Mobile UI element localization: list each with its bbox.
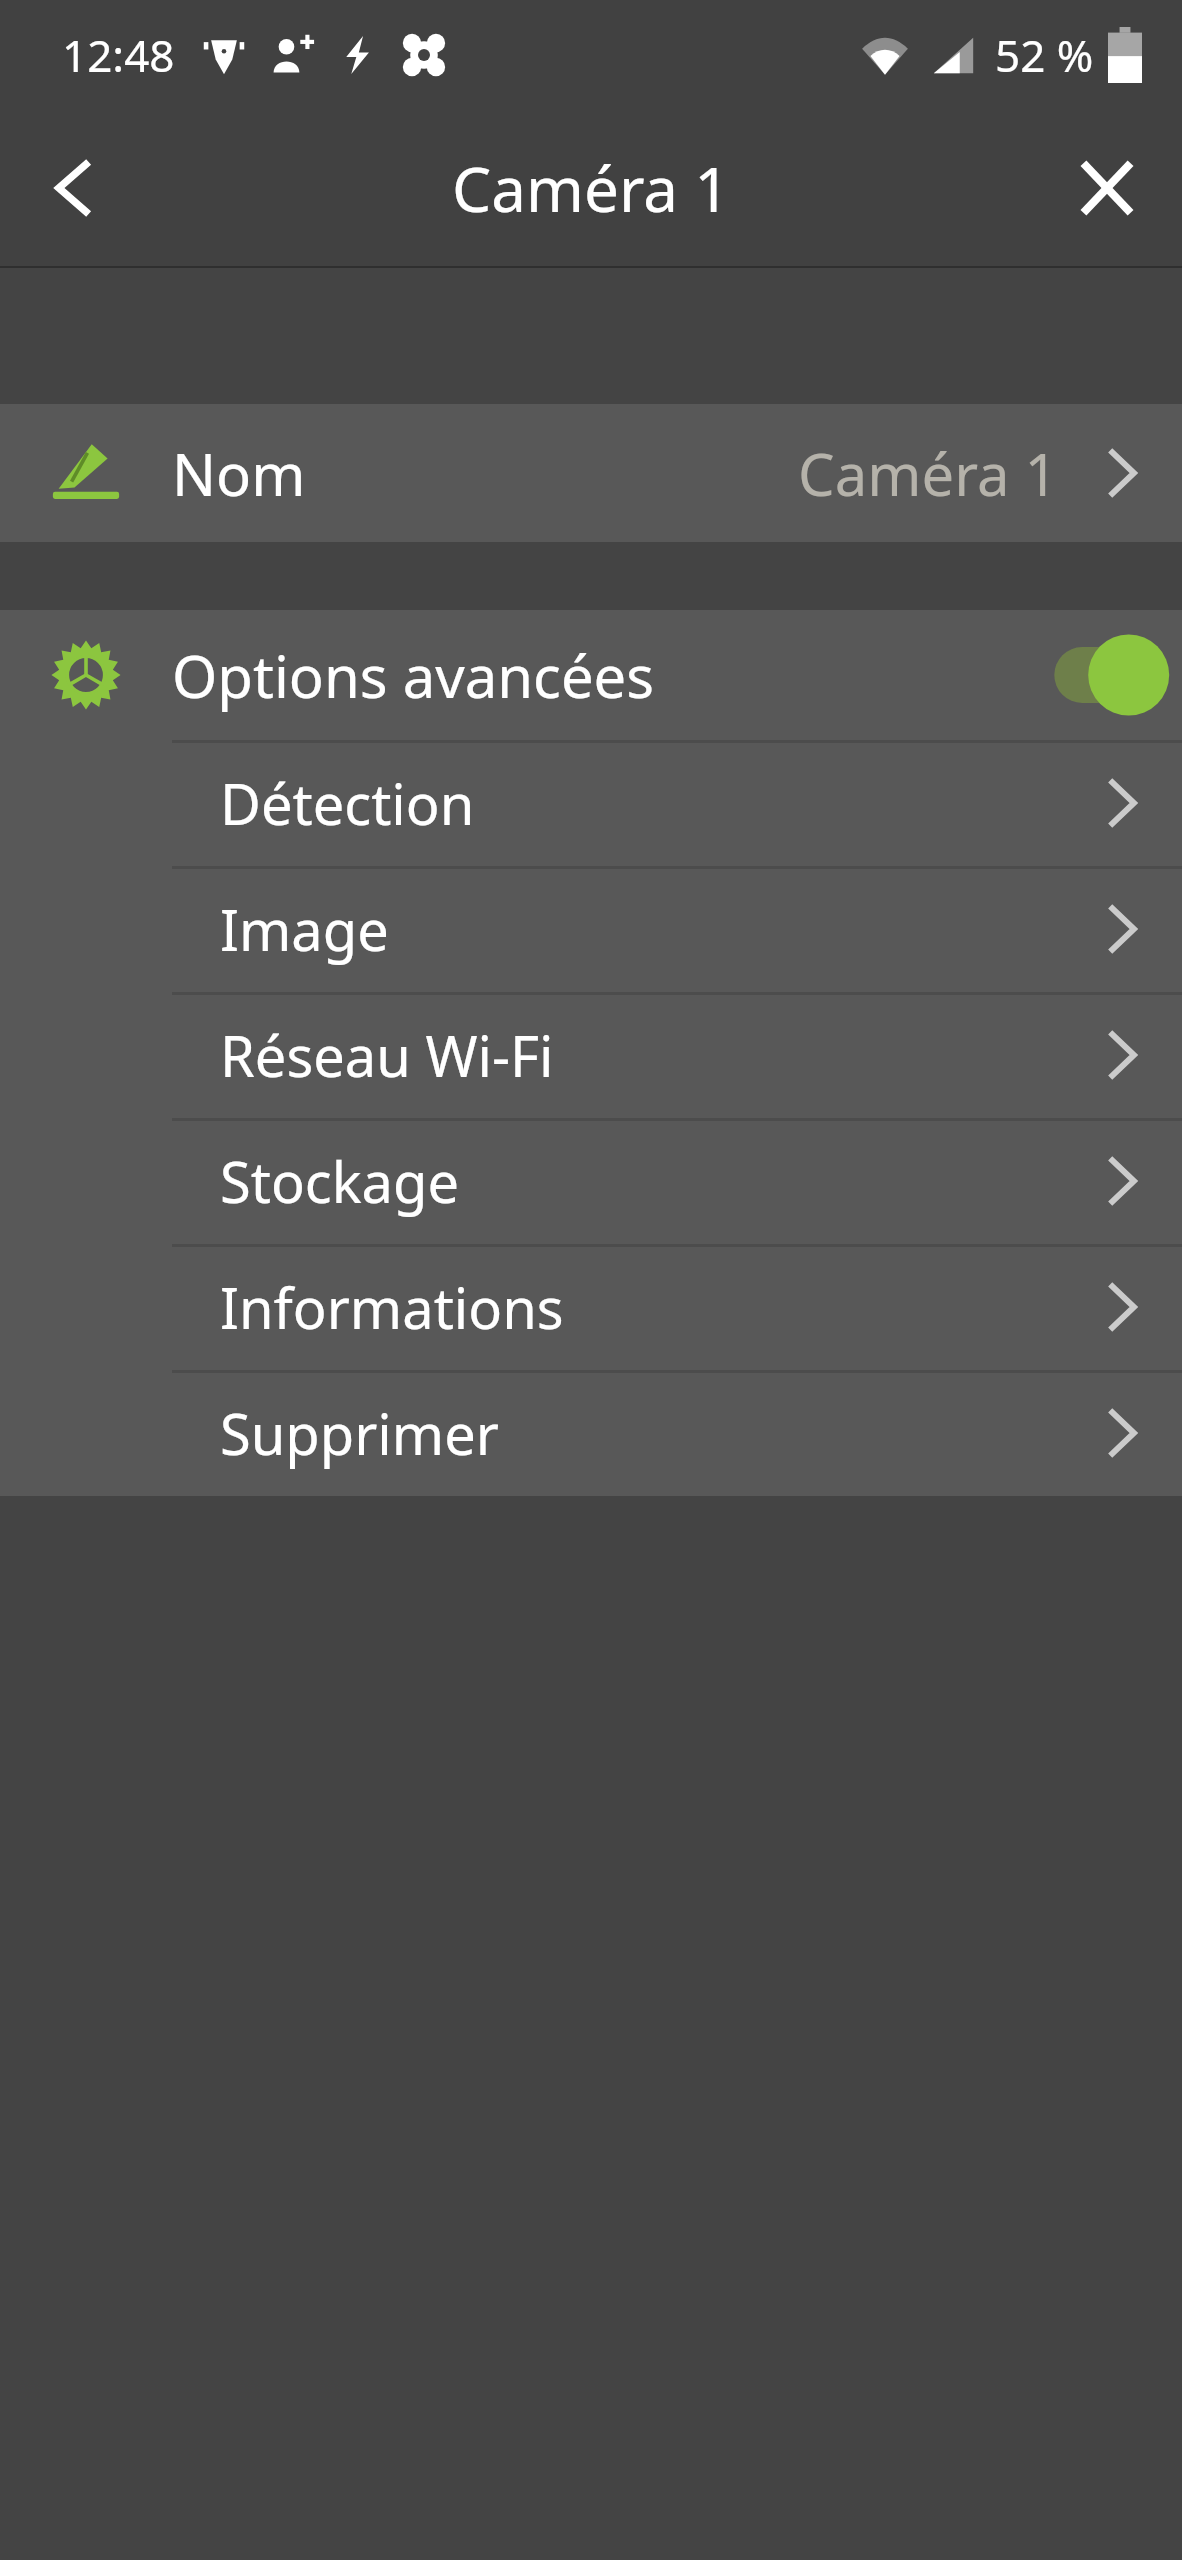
staticText: Nom: [172, 434, 306, 513]
staticText: Options avancées: [172, 636, 655, 715]
button[interactable]: Back: [0, 113, 150, 263]
button[interactable]: Informations: [0, 1244, 1182, 1370]
staticText: Caméra 1: [798, 434, 1058, 513]
staticText: Réseau Wi-Fi: [220, 1017, 554, 1093]
button[interactable]: Stockage: [0, 1118, 1182, 1244]
button[interactable]: Toggle advanced options: [1040, 630, 1170, 720]
staticText: Supprimer: [220, 1395, 499, 1471]
button[interactable]: Nom: [0, 404, 1182, 542]
button[interactable]: Close: [1032, 113, 1182, 263]
staticText: Informations: [220, 1269, 564, 1345]
button[interactable]: Supprimer: [0, 1370, 1182, 1496]
staticText: 52 %: [995, 25, 1094, 85]
button[interactable]: Réseau Wi-Fi: [0, 992, 1182, 1118]
staticText: Stockage: [220, 1143, 460, 1219]
button[interactable]: Image: [0, 866, 1182, 992]
staticText: Image: [220, 891, 389, 967]
staticText: Détection: [220, 765, 475, 841]
staticText: 12:48: [62, 25, 175, 85]
staticText: Caméra 1: [452, 146, 730, 230]
button[interactable]: Détection: [0, 740, 1182, 866]
button[interactable]: Options avancées: [0, 610, 1182, 740]
